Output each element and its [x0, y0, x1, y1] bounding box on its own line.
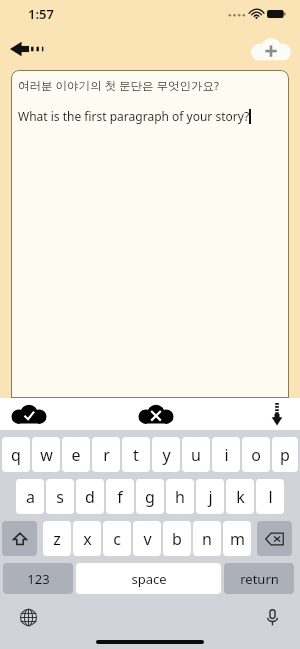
staticText: f: [117, 486, 123, 508]
button[interactable]: d: [76, 479, 104, 514]
staticText: 1:57: [28, 5, 54, 23]
button[interactable]: Backspace: [257, 521, 292, 556]
staticText: r: [103, 444, 110, 466]
staticText: a: [26, 486, 35, 508]
button[interactable]: z: [43, 521, 71, 556]
button[interactable]: q: [2, 437, 30, 472]
button[interactable]: space: [76, 563, 221, 594]
staticText: l: [268, 486, 273, 508]
staticText: y: [162, 444, 171, 466]
button[interactable]: i: [212, 437, 240, 472]
button[interactable]: k: [226, 479, 254, 514]
staticText: space: [131, 570, 167, 588]
staticText: j: [208, 486, 213, 508]
button[interactable]: f: [106, 479, 134, 514]
staticText: k: [236, 486, 245, 508]
staticText: e: [71, 444, 81, 466]
button[interactable]: u: [182, 437, 210, 472]
staticText: What is the first paragraph of your stor…: [18, 108, 250, 124]
staticText: t: [133, 444, 139, 466]
button[interactable]: b: [163, 521, 191, 556]
button[interactable]: l: [256, 479, 284, 514]
button[interactable]: a: [16, 479, 44, 514]
staticText: m: [230, 528, 245, 550]
button[interactable]: 여러분 이야기의 첫 문단은 무엇인가요?: [11, 70, 289, 398]
button[interactable]: 123: [3, 563, 73, 594]
button[interactable]: Add: [252, 36, 290, 62]
button[interactable]: n: [193, 521, 221, 556]
button[interactable]: o: [242, 437, 270, 472]
button[interactable]: return: [224, 563, 294, 594]
button[interactable]: w: [32, 437, 60, 472]
button[interactable]: s: [46, 479, 74, 514]
button[interactable]: t: [122, 437, 150, 472]
button[interactable]: Hide keyboard: [266, 401, 288, 427]
other: Add: [252, 36, 290, 62]
staticText: z: [53, 528, 61, 550]
button[interactable]: Cancel: [139, 403, 173, 425]
button[interactable]: Shift: [2, 521, 37, 556]
button[interactable]: j: [196, 479, 224, 514]
staticText: v: [143, 528, 152, 550]
button[interactable]: x: [73, 521, 101, 556]
staticText: u: [191, 444, 201, 466]
button[interactable]: Save: [12, 403, 46, 425]
staticText: q: [11, 444, 21, 466]
staticText: 123: [27, 570, 50, 588]
other: Cancel: [139, 403, 173, 425]
button[interactable]: Dictation: [260, 605, 284, 629]
other: Save: [12, 403, 46, 425]
button[interactable]: y: [152, 437, 180, 472]
button[interactable]: c: [103, 521, 131, 556]
staticText: w: [40, 444, 53, 466]
button[interactable]: g: [136, 479, 164, 514]
button[interactable]: v: [133, 521, 161, 556]
staticText: c: [113, 528, 121, 550]
button[interactable]: p: [272, 437, 298, 472]
staticText: return: [240, 570, 279, 588]
staticText: x: [83, 528, 92, 550]
staticText: 여러분 이야기의 첫 문단은 무엇인가요?: [18, 78, 219, 94]
staticText: p: [280, 444, 290, 466]
button[interactable]: r: [92, 437, 120, 472]
button[interactable]: m: [223, 521, 251, 556]
staticText: b: [172, 528, 182, 550]
button[interactable]: h: [166, 479, 194, 514]
button[interactable]: Back: [10, 33, 54, 65]
staticText: o: [251, 444, 261, 466]
button[interactable]: e: [62, 437, 90, 472]
staticText: i: [224, 444, 229, 466]
staticText: n: [202, 528, 212, 550]
staticText: d: [85, 486, 95, 508]
staticText: g: [145, 486, 155, 508]
button[interactable]: Change keyboard: [16, 605, 40, 629]
staticText: h: [175, 486, 185, 508]
staticText: s: [56, 486, 64, 508]
